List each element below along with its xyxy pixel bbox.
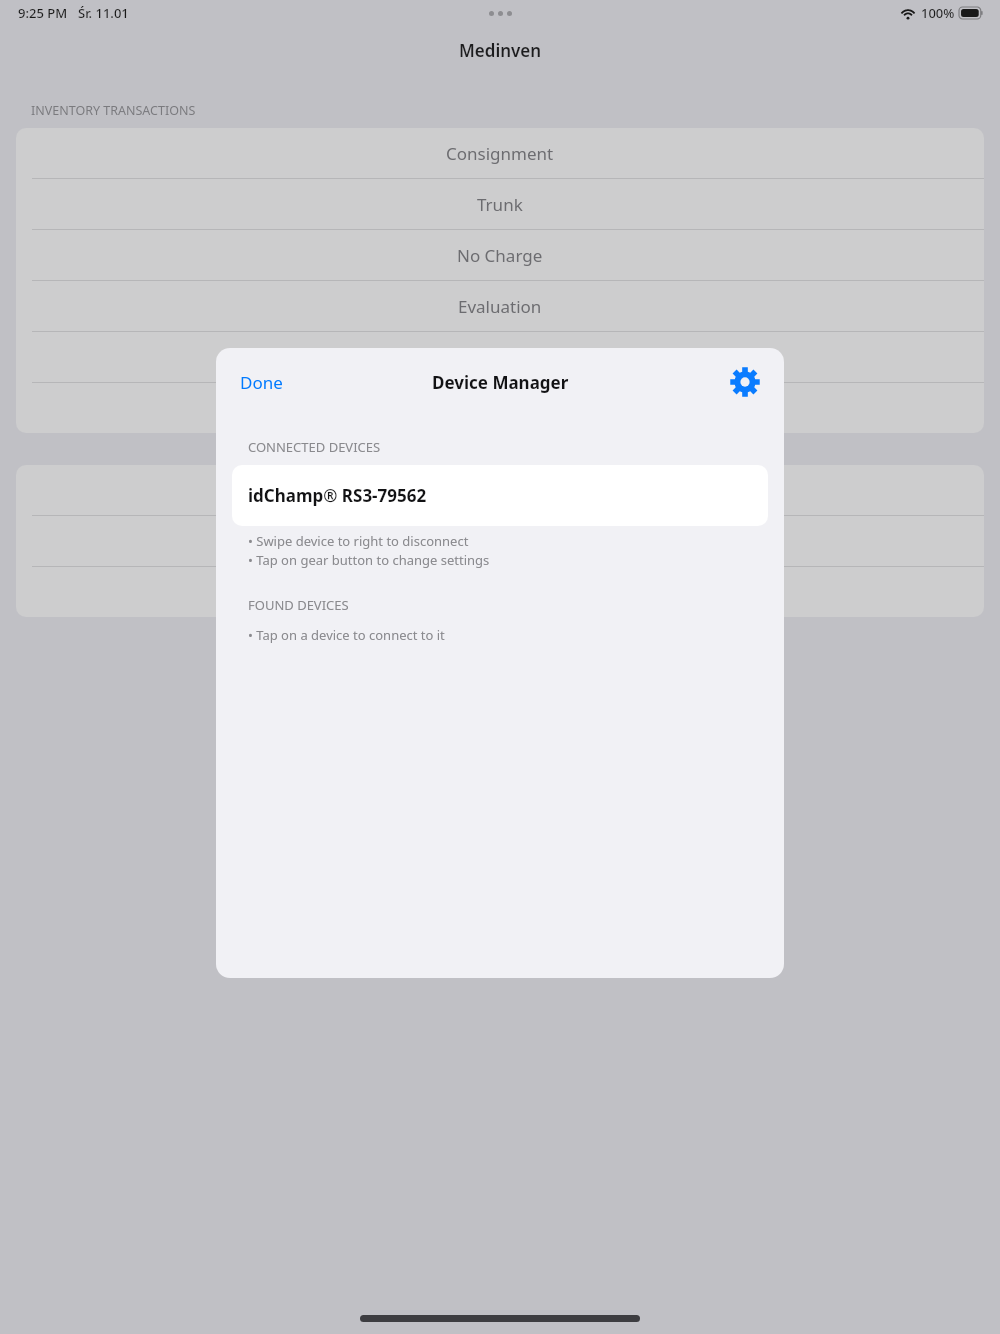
staticText: Inv Movements [438, 346, 562, 369]
staticText: Evaluation [458, 295, 542, 318]
button[interactable]: Evaluation [16, 281, 984, 331]
button[interactable]: Settings [724, 361, 766, 403]
button[interactable]: Consignment [16, 128, 984, 178]
staticText: Medinven [459, 39, 542, 62]
staticText: Consignment [446, 142, 554, 165]
button[interactable] [16, 516, 984, 566]
staticText: Trunk [477, 193, 523, 216]
button[interactable]: Trunk [16, 179, 984, 229]
button[interactable]: idChamp® RS3-79562 [232, 465, 768, 526]
staticText: 100% [921, 4, 955, 22]
staticText: • Swipe device to right to disconnect [248, 532, 469, 550]
staticText: Śr. 11.01 [78, 4, 129, 22]
staticText: • Tap on a device to connect to it [248, 626, 445, 644]
staticText: 9:25 PM [18, 4, 68, 22]
button[interactable] [16, 383, 984, 433]
button[interactable]: No Charge [16, 230, 984, 280]
staticText: FOUND DEVICES [248, 596, 349, 614]
staticText: • Tap on gear button to change settings [248, 551, 490, 569]
staticText: Device Manager [432, 371, 569, 394]
button[interactable]: Inv Movements [16, 332, 984, 382]
button[interactable] [16, 567, 984, 617]
button[interactable]: Done [216, 363, 297, 402]
staticText: idChamp® RS3-79562 [248, 484, 427, 507]
staticText: No Charge [457, 244, 543, 267]
button[interactable] [16, 465, 984, 515]
staticText: INVENTORY TRANSACTIONS [31, 102, 196, 119]
staticText: CONNECTED DEVICES [248, 438, 381, 456]
staticText: Done [240, 371, 283, 394]
